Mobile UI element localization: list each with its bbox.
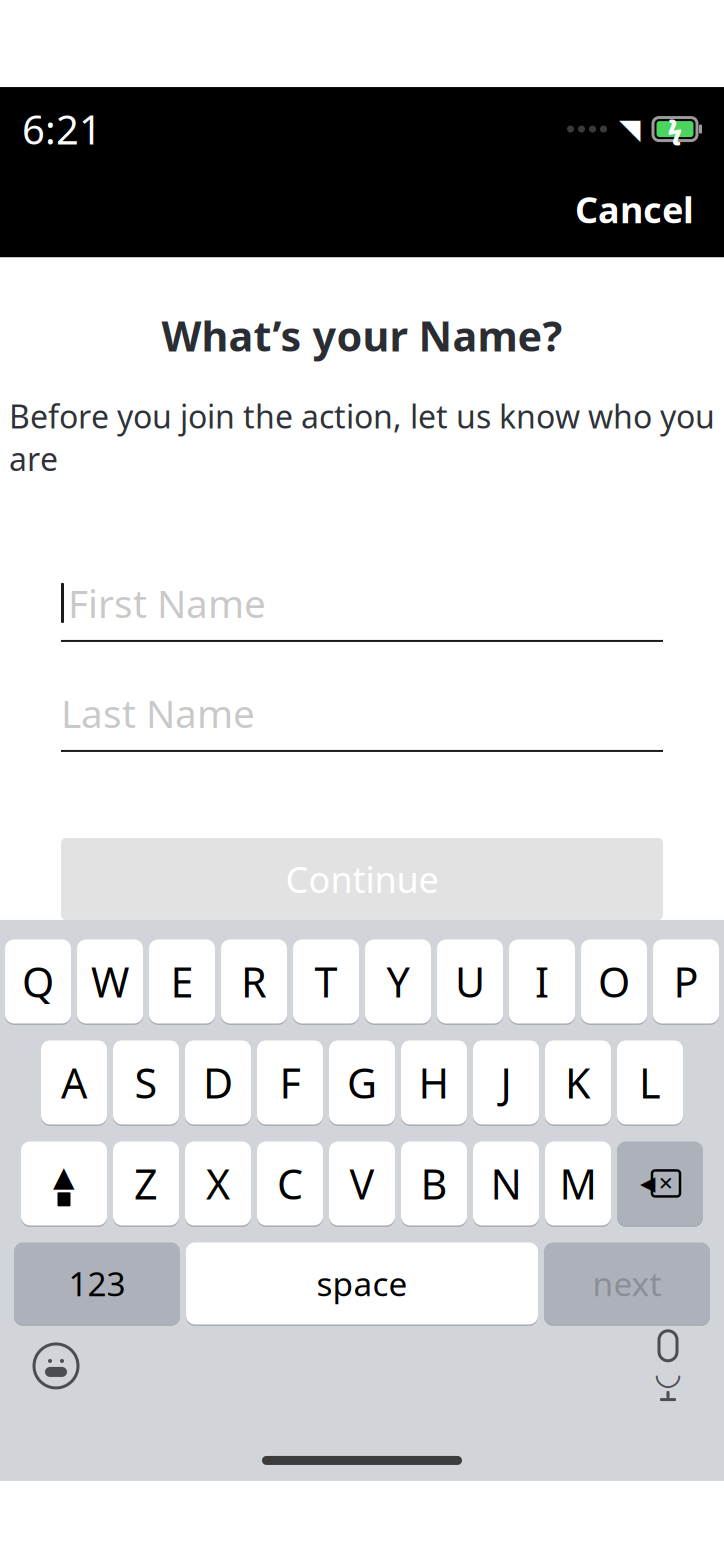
staticText: T — [314, 954, 337, 1009]
staticText: F — [279, 1055, 300, 1110]
button[interactable]: next — [544, 1241, 710, 1326]
button[interactable]: Y — [365, 938, 431, 1025]
button[interactable]: F — [257, 1039, 323, 1126]
staticText: U — [455, 954, 485, 1009]
staticText: What’s your Name? — [161, 308, 562, 363]
staticText: next — [592, 1261, 661, 1306]
staticText: space — [316, 1261, 407, 1306]
button[interactable]: Delete — [617, 1140, 703, 1227]
staticText: Continue — [285, 855, 438, 903]
button[interactable]: V — [329, 1140, 395, 1227]
button[interactable]: R — [221, 938, 287, 1025]
staticText: Before you join the action, let us know … — [9, 395, 715, 480]
button[interactable]: G — [329, 1039, 395, 1126]
staticText: Last Name — [61, 687, 255, 739]
staticText: K — [565, 1055, 591, 1110]
button[interactable]: space — [186, 1241, 538, 1326]
button[interactable]: E — [149, 938, 215, 1025]
staticText: O — [598, 954, 630, 1009]
staticText: W — [91, 954, 129, 1009]
button[interactable]: I — [509, 938, 575, 1025]
staticText: V — [349, 1156, 374, 1211]
staticText: ◀ — [640, 1172, 655, 1195]
button[interactable]: S — [113, 1039, 179, 1126]
button[interactable]: Cancel — [559, 175, 710, 243]
staticText: First Name — [68, 577, 266, 629]
button[interactable]: Dictate — [638, 1336, 698, 1396]
staticText: B — [420, 1156, 447, 1211]
button[interactable]: 123 — [14, 1241, 180, 1326]
staticText: Cancel — [575, 185, 694, 233]
staticText: G — [347, 1055, 377, 1110]
staticText: J — [500, 1055, 511, 1110]
staticText: M — [559, 1156, 596, 1211]
button[interactable]: D — [185, 1039, 251, 1126]
staticText: ▲ — [53, 1160, 75, 1192]
staticText: Q — [22, 954, 54, 1009]
button[interactable]: Emoji keyboard — [26, 1336, 86, 1396]
staticText: ◥ — [619, 113, 641, 145]
staticText: ϟ — [667, 111, 682, 147]
staticText: I — [535, 954, 549, 1009]
button[interactable]: Z — [113, 1140, 179, 1227]
button[interactable]: W — [77, 938, 143, 1025]
staticText: S — [134, 1055, 157, 1110]
staticText: ✕ — [658, 1173, 674, 1194]
button[interactable]: L — [617, 1039, 683, 1126]
button[interactable]: C — [257, 1140, 323, 1227]
button[interactable]: Q — [5, 938, 71, 1025]
staticText: X — [206, 1156, 230, 1211]
staticText: 6:21 — [22, 102, 102, 156]
button[interactable]: U — [437, 938, 503, 1025]
staticText: L — [639, 1055, 661, 1110]
button[interactable]: J — [473, 1039, 539, 1126]
staticText: D — [203, 1055, 233, 1110]
staticText: Y — [386, 954, 409, 1009]
staticText: E — [170, 954, 193, 1009]
button[interactable]: M — [545, 1140, 611, 1227]
staticText: Z — [134, 1156, 158, 1211]
button[interactable]: X — [185, 1140, 251, 1227]
button[interactable]: Continue — [61, 838, 663, 920]
button[interactable]: B — [401, 1140, 467, 1227]
button[interactable]: N — [473, 1140, 539, 1227]
staticText: ◡ — [654, 1355, 682, 1391]
staticText: P — [673, 954, 698, 1009]
button[interactable]: P — [653, 938, 719, 1025]
staticText: H — [418, 1055, 449, 1110]
button[interactable]: O — [581, 938, 647, 1025]
button[interactable]: Shift — [21, 1140, 107, 1227]
button[interactable]: H — [401, 1039, 467, 1126]
button[interactable]: A — [41, 1039, 107, 1126]
staticText: A — [61, 1055, 87, 1110]
button[interactable]: T — [293, 938, 359, 1025]
staticText: R — [241, 954, 267, 1009]
staticText: 123 — [68, 1261, 125, 1306]
staticText: C — [277, 1156, 303, 1211]
button[interactable]: K — [545, 1039, 611, 1126]
staticText: N — [490, 1156, 521, 1211]
